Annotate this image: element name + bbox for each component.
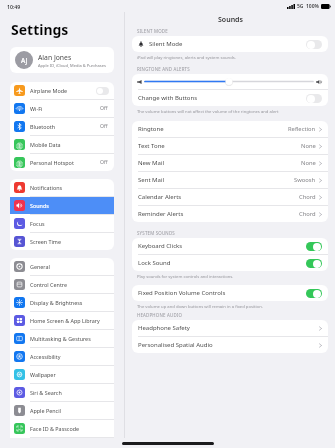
staticText: Bluetooth [30,123,100,130]
staticText: Focus [30,220,110,227]
staticText: The volume buttons will not affect the v… [137,109,279,115]
staticText: Lock Sound [138,259,306,267]
staticText: SYSTEM SOUNDS [137,230,175,236]
button[interactable]: Keyboard Clicks on [306,242,322,251]
button[interactable]: AJ [10,47,114,73]
staticText: Mobile Data [30,141,110,148]
staticText: Settings [11,20,69,39]
staticText: Chord [299,210,316,218]
button[interactable]: Change with Buttons [132,90,328,106]
staticText: HEADPHONE AUDIO [137,312,183,318]
button[interactable]: Home Screen & App Library [10,312,114,329]
staticText: Play sounds for system controls and inte… [137,274,234,280]
button[interactable]: Text Tone [132,138,328,154]
button[interactable]: Personalised Spatial Audio [132,337,328,353]
staticText: None [301,142,316,150]
button[interactable]: General [10,258,114,275]
staticText: General [30,263,110,270]
staticText: Wi-Fi [30,105,100,112]
button[interactable]: Headphone Safety [132,320,328,336]
staticText: Personal Hotspot [30,159,100,166]
button[interactable]: Lock Sound [132,255,328,271]
staticText: AJ [21,56,28,65]
button[interactable]: Screen Time [10,233,114,250]
staticText: None [301,159,316,167]
staticText: 100% [306,3,319,10]
staticText: Sounds [218,15,243,25]
staticText: Calendar Alerts [138,193,299,201]
button[interactable]: Ringtone [132,121,328,137]
staticText: Silent Mode [149,40,306,48]
button[interactable]: Display & Brightness [10,294,114,311]
staticText: Off [100,105,108,112]
button[interactable]: Airplane Mode off [96,87,109,95]
button[interactable]: Silent Mode off [306,40,322,49]
staticText: New Mail [138,159,301,167]
staticText: 10:49 [7,3,21,10]
staticText: Text Tone [138,142,301,150]
staticText: Reminder Alerts [138,210,299,218]
button[interactable]: Bluetooth [10,118,114,135]
button[interactable]: Silent Mode [132,36,328,52]
button[interactable]: Fixed Position Volume Controls on [306,289,322,298]
button[interactable]: Fixed Position Volume Controls [132,285,328,301]
staticText: Ringtone [138,125,288,133]
staticText: Face ID & Passcode [30,425,110,432]
button[interactable]: Wi-Fi [10,100,114,117]
button[interactable]: Face ID & Passcode [10,420,114,437]
staticText: The volume up and down buttons will rema… [137,304,263,310]
button[interactable]: Siri & Search [10,384,114,401]
staticText: Alan Jones [38,53,72,62]
button[interactable]: New Mail [132,155,328,171]
staticText: Notifications [30,184,110,191]
staticText: Headphone Safety [138,324,319,332]
staticText: Multitasking & Gestures [30,335,110,342]
staticText: Fixed Position Volume Controls [138,289,306,297]
staticText: Screen Time [30,238,110,245]
staticText: Apple ID, iCloud, Media & Purchases [38,63,106,68]
button[interactable]: Notifications [10,179,114,196]
staticText: Siri & Search [30,389,110,396]
button[interactable]: Personal Hotspot [10,154,114,171]
staticText: Reflection [288,125,316,133]
button[interactable]: Reminder Alerts [132,206,328,222]
staticText: Off [100,159,108,166]
button[interactable]: Control Centre [10,276,114,293]
button[interactable]: Wallpaper [10,366,114,383]
staticText: Display & Brightness [30,299,110,306]
staticText: Accessibility [30,353,110,360]
staticText: Sounds [30,202,110,209]
button[interactable]: Sent Mail [132,172,328,188]
staticText: Change with Buttons [138,94,306,102]
staticText: Keyboard Clicks [138,242,306,250]
staticText: Swoosh [294,176,316,184]
staticText: Home Screen & App Library [30,317,110,324]
staticText: iPad will play ringtones, alerts and sys… [137,55,236,61]
staticText: Chord [299,193,316,201]
button[interactable]: Change with Buttons off [306,94,322,103]
staticText: RINGTONE AND ALERTS [137,66,190,72]
button[interactable]: Apple Pencil [10,402,114,419]
button[interactable]: Lock Sound on [306,259,322,268]
button[interactable]: Mobile Data [10,136,114,153]
staticText: Sent Mail [138,176,294,184]
button[interactable]: Keyboard Clicks [132,238,328,254]
staticText: 5G [297,3,304,10]
staticText: Wallpaper [30,371,110,378]
button[interactable]: Airplane Mode [10,82,114,99]
button[interactable]: Multitasking & Gestures [10,330,114,347]
button[interactable]: Calendar Alerts [132,189,328,205]
staticText: Control Centre [30,281,110,288]
button[interactable]: Accessibility [10,348,114,365]
button[interactable]: Sounds [10,197,114,214]
staticText: Off [100,123,108,130]
button[interactable]: Focus [10,215,114,232]
staticText: Airplane Mode [30,87,96,94]
button[interactable]: Ringtone and alerts volume [145,77,313,86]
staticText: Apple Pencil [30,407,110,414]
staticText: SILENT MODE [137,28,168,34]
staticText: Personalised Spatial Audio [138,341,319,349]
